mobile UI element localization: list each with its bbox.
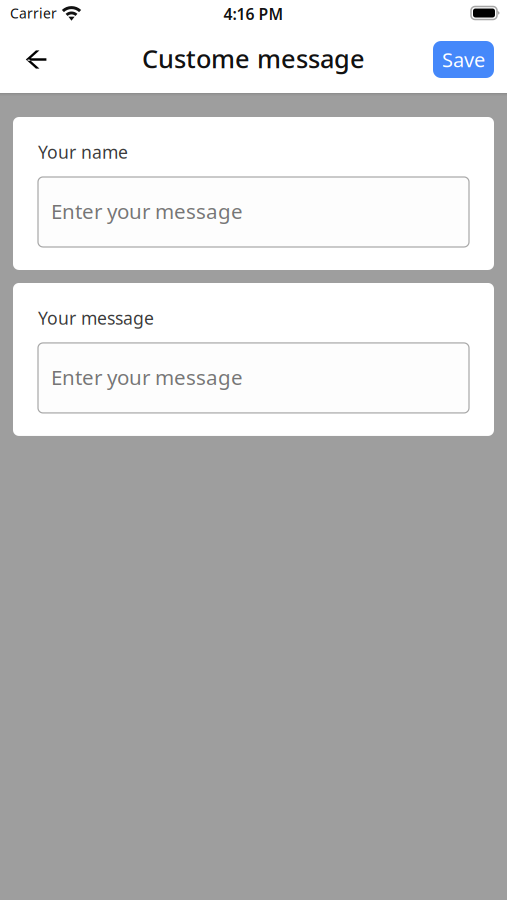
staticText: Custome message	[142, 42, 365, 75]
staticText: 4:16 PM	[223, 3, 283, 25]
staticText: Carrier	[10, 4, 57, 22]
button[interactable]: Save	[433, 41, 494, 78]
staticText: Your name	[38, 140, 128, 164]
staticText: Save	[442, 46, 485, 73]
button[interactable]: Your message	[38, 343, 469, 413]
button[interactable]: Your name	[38, 177, 469, 247]
staticText: Your message	[38, 306, 154, 330]
staticText: Enter your message	[51, 363, 243, 391]
button[interactable]: Back	[13, 37, 57, 81]
staticText: Enter your message	[51, 197, 243, 225]
